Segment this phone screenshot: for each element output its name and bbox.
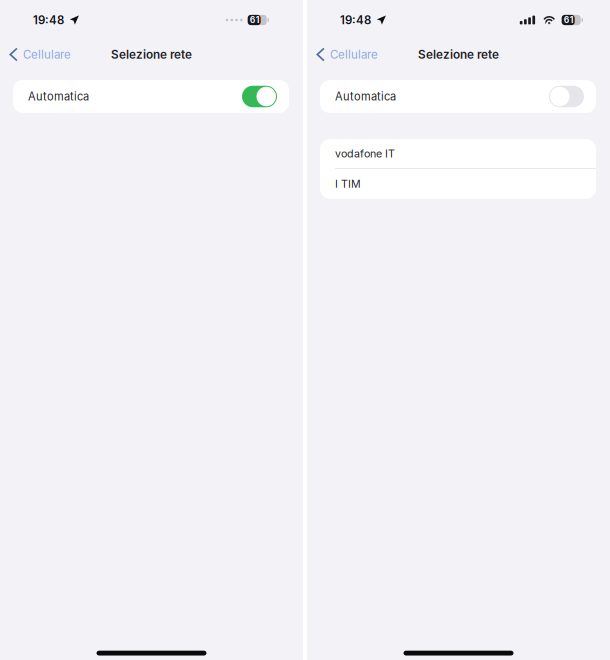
staticText: vodafone IT	[335, 147, 395, 160]
staticText: Cellulare	[330, 48, 378, 61]
staticText: 19:48	[340, 13, 371, 27]
button[interactable]: Off	[320, 80, 596, 113]
button[interactable]: Cellulare	[307, 42, 384, 67]
staticText: 61	[250, 15, 260, 25]
staticText: Selezione rete	[111, 47, 192, 62]
staticText: 61	[564, 15, 574, 25]
button[interactable]: Cellulare	[0, 42, 77, 67]
staticText: I TIM	[335, 177, 361, 190]
staticText: Selezione rete	[418, 47, 499, 62]
button[interactable]: I TIM	[320, 169, 596, 199]
staticText: Cellulare	[23, 48, 71, 61]
staticText: Automatica	[28, 90, 89, 103]
button[interactable]: vodafone IT	[320, 139, 596, 168]
button[interactable]: On	[13, 80, 289, 113]
staticText: Automatica	[335, 90, 396, 103]
staticText: 19:48	[33, 13, 64, 27]
